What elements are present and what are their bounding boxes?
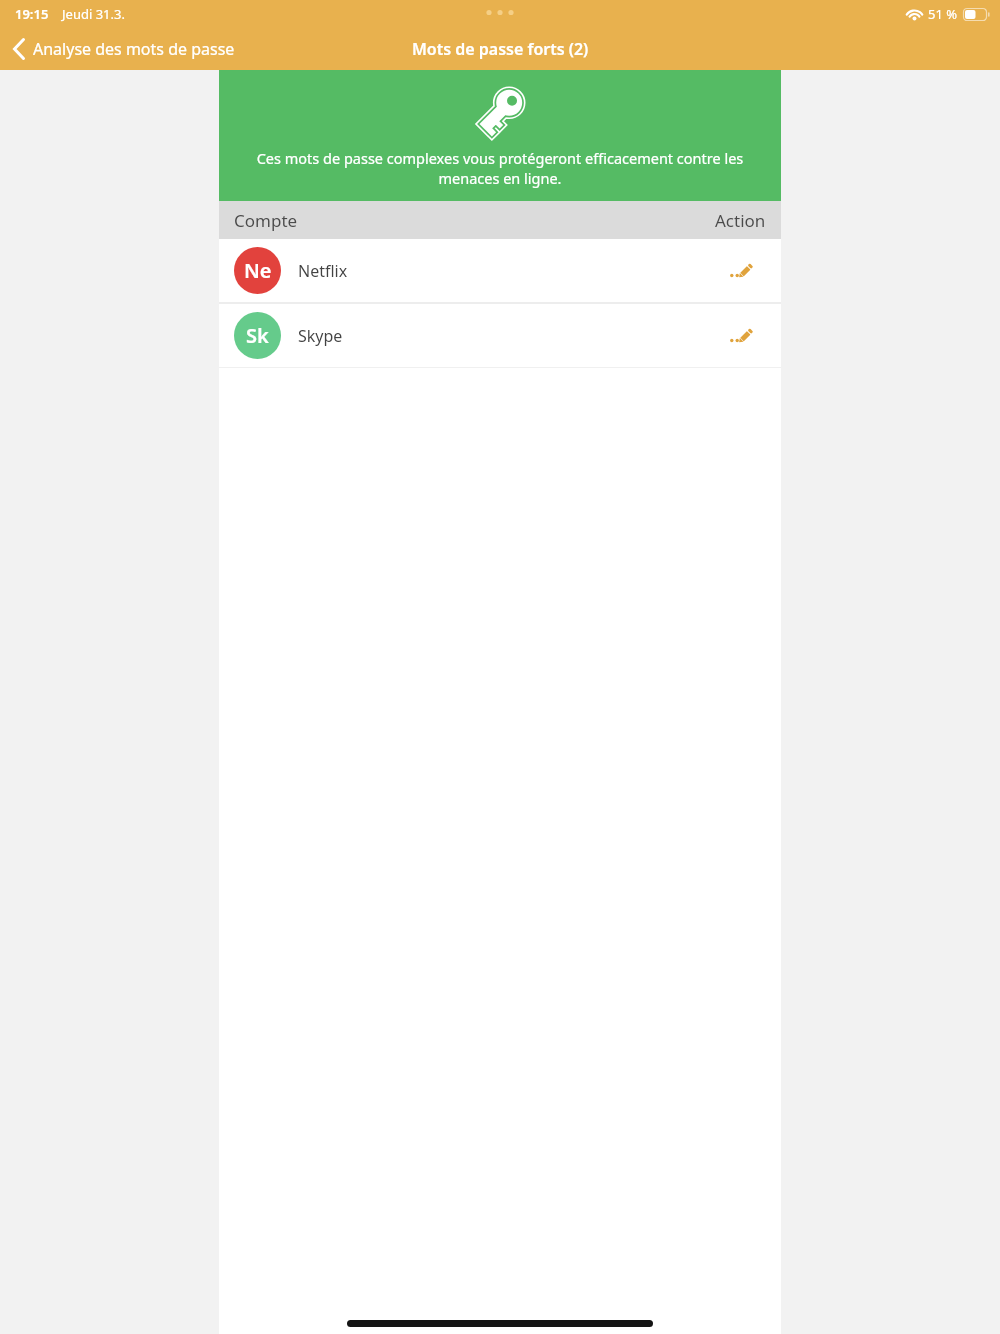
staticText: Sk	[246, 322, 269, 349]
staticText: 51 %	[928, 5, 958, 23]
button[interactable]: Ne	[219, 239, 781, 302]
staticText: Action	[715, 209, 766, 232]
button[interactable]	[730, 263, 751, 279]
button[interactable]: Analyse des mots de passe	[12, 38, 235, 60]
staticText: 19:15	[15, 5, 49, 23]
staticText: Mots de passe forts (2)	[412, 38, 589, 60]
staticText: Compte	[234, 209, 298, 232]
staticText: Analyse des mots de passe	[33, 38, 235, 60]
staticText: Ne	[244, 257, 272, 284]
staticText: Skype	[298, 325, 343, 347]
staticText: Jeudi 31.3.	[62, 5, 125, 23]
button[interactable]: Sk	[219, 304, 781, 367]
staticText: Netflix	[298, 260, 348, 282]
button[interactable]	[730, 328, 751, 344]
staticText: Ces mots de passe complexes vous protége…	[219, 148, 781, 188]
